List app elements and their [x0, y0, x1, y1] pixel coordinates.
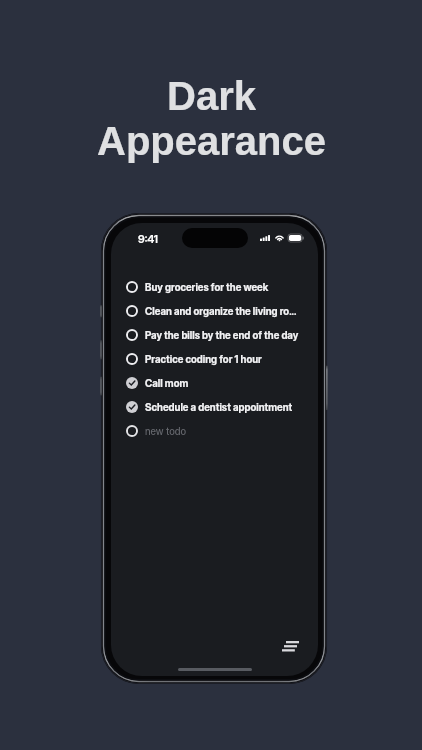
staticText: Call mom — [145, 377, 189, 389]
button[interactable]: Call mom — [111, 371, 318, 395]
button[interactable]: Schedule a dentist appointment — [111, 395, 318, 419]
button[interactable]: new todo — [111, 419, 318, 443]
button[interactable]: Pay the bills by the end of the day — [111, 323, 318, 347]
staticText: new todo — [145, 425, 187, 437]
staticText: Clean and organize the living ro... — [145, 305, 297, 317]
button[interactable]: Sort todos — [276, 634, 304, 658]
staticText: Schedule a dentist appointment — [145, 401, 293, 413]
staticText: Buy groceries for the week — [145, 281, 269, 293]
button[interactable]: Practice coding for 1 hour — [111, 347, 318, 371]
button[interactable]: Buy groceries for the week — [111, 275, 318, 299]
button[interactable]: Clean and organize the living ro... — [111, 299, 318, 323]
staticText: 9:41 — [138, 232, 159, 245]
staticText: Pay the bills by the end of the day — [145, 329, 299, 341]
staticText: Practice coding for 1 hour — [145, 353, 262, 365]
staticText: Appearance — [97, 119, 326, 164]
staticText: Dark — [167, 74, 256, 119]
